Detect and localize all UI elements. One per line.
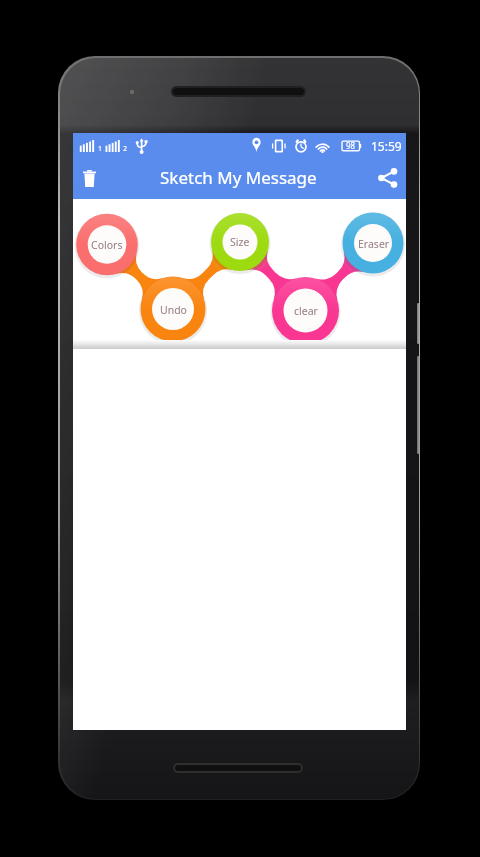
staticText: 98 <box>346 140 356 151</box>
button[interactable]: clear <box>272 277 339 344</box>
button[interactable]: Size <box>211 213 269 271</box>
staticText: Eraser <box>358 237 390 251</box>
staticText: Size <box>230 235 250 249</box>
staticText: Colors <box>91 238 123 252</box>
button[interactable]: Delete <box>72 161 106 195</box>
staticText: 15:59 <box>371 138 402 154</box>
staticText: 2 <box>123 144 128 154</box>
button[interactable]: Share <box>371 161 405 195</box>
staticText: 1 <box>98 144 103 154</box>
button[interactable]: Eraser <box>343 213 404 274</box>
button[interactable]: Undo <box>141 277 206 342</box>
staticText: clear <box>294 304 318 318</box>
staticText: Sketch My Message <box>160 166 317 189</box>
staticText: Undo <box>160 303 187 317</box>
button[interactable]: Colors <box>76 214 138 276</box>
